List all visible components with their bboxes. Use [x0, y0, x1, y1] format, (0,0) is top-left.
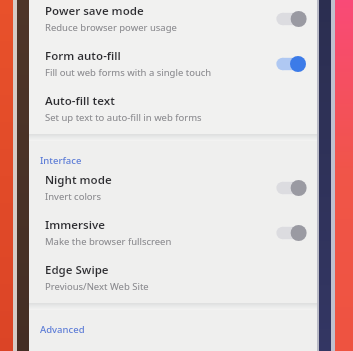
staticText: Power save mode: [45, 3, 144, 19]
staticText: Make the browser fullscreen: [45, 235, 172, 248]
button[interactable]: Edge Swipe: [29, 256, 317, 303]
staticText: Set up text to auto-fill in web forms: [45, 111, 202, 124]
staticText: Auto-fill text: [45, 93, 115, 109]
button[interactable]: Toggle Night mode: [273, 178, 307, 198]
button[interactable]: Form auto-fill: [29, 42, 317, 87]
button[interactable]: Toggle Form auto-fill: [273, 54, 307, 74]
button[interactable]: Toggle Immersive: [273, 223, 307, 243]
button[interactable]: Auto-fill text: [29, 87, 317, 134]
staticText: Edge Swipe: [45, 262, 109, 278]
staticText: Reduce browser power usage: [45, 21, 177, 34]
staticText: Form auto-fill: [45, 48, 121, 64]
button[interactable]: Night mode: [29, 170, 317, 211]
button[interactable]: Toggle Power save mode: [273, 9, 307, 29]
staticText: Night mode: [45, 172, 112, 188]
staticText: Advanced: [40, 323, 85, 336]
staticText: Previous/Next Web Site: [45, 280, 149, 293]
button[interactable]: Power save mode: [29, 0, 317, 42]
staticText: Invert colors: [45, 190, 102, 203]
staticText: Immersive: [45, 217, 105, 233]
button[interactable]: Immersive: [29, 211, 317, 256]
staticText: Interface: [40, 154, 82, 167]
staticText: Fill out web forms with a single touch: [45, 66, 212, 79]
